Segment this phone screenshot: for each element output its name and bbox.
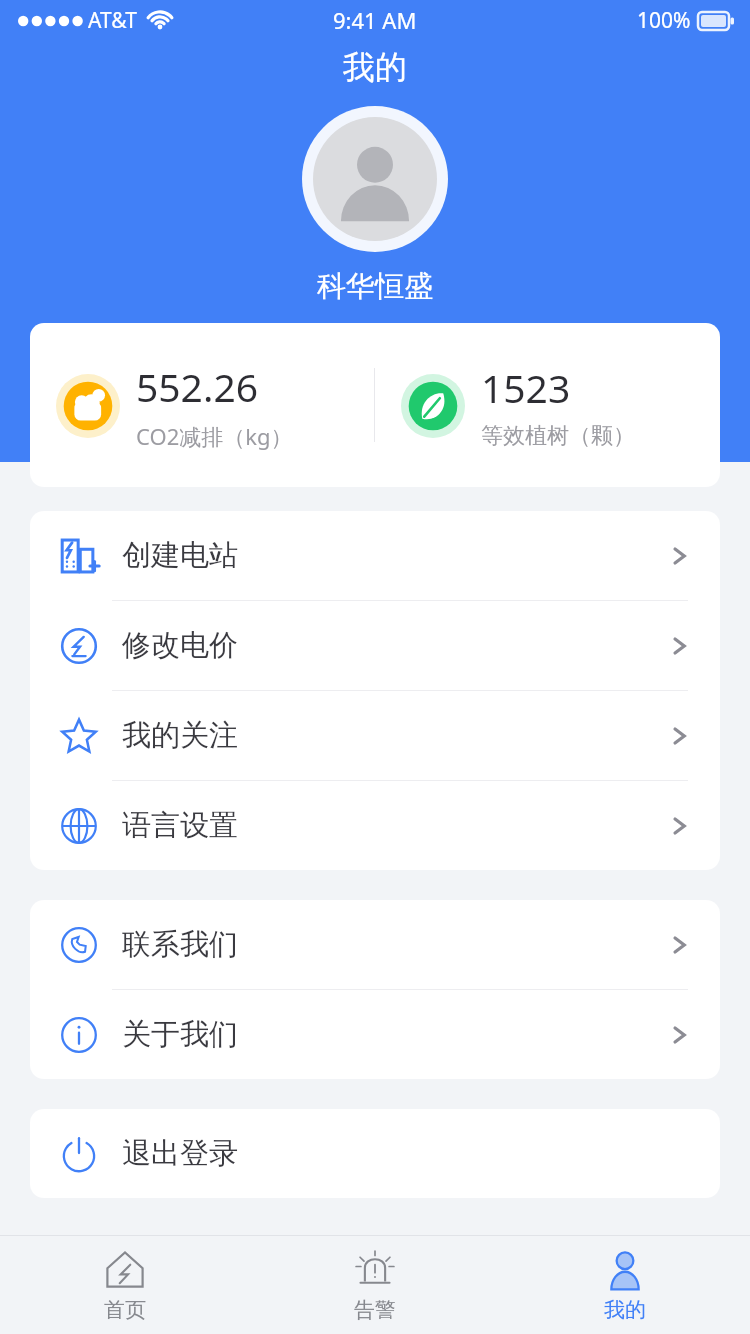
- staticText: 联系我们: [122, 926, 238, 963]
- staticText: 我的关注: [122, 717, 238, 754]
- staticText: 语言设置: [122, 807, 238, 844]
- button[interactable]: 语言设置: [30, 781, 720, 870]
- staticText: 创建电站: [122, 537, 238, 574]
- other: Profile avatar: [302, 106, 448, 252]
- staticText: 关于我们: [122, 1016, 238, 1053]
- button[interactable]: 首页: [0, 1236, 250, 1334]
- button[interactable]: 告警: [250, 1236, 500, 1334]
- staticText: 100%: [637, 6, 691, 35]
- staticText: AT&T: [88, 6, 137, 35]
- staticText: 我的: [604, 1297, 646, 1323]
- staticText: 告警: [354, 1297, 396, 1323]
- staticText: 等效植树（颗）: [481, 422, 635, 450]
- staticText: 修改电价: [122, 627, 238, 664]
- staticText: 退出登录: [122, 1135, 238, 1172]
- staticText: 我的: [343, 47, 407, 87]
- button[interactable]: 我的: [500, 1236, 750, 1334]
- staticText: 9:41 AM: [333, 5, 417, 35]
- staticText: 首页: [104, 1297, 146, 1323]
- button[interactable]: 修改电价: [30, 601, 720, 690]
- button[interactable]: 联系我们: [30, 900, 720, 989]
- button[interactable]: 退出登录: [30, 1109, 720, 1198]
- button[interactable]: 关于我们: [30, 990, 720, 1079]
- button[interactable]: 创建电站: [30, 511, 720, 600]
- staticText: 1523: [481, 361, 571, 414]
- staticText: 科华恒盛: [317, 268, 433, 305]
- staticText: 552.26: [136, 360, 258, 413]
- staticText: CO2减排（kg）: [136, 421, 293, 451]
- button[interactable]: 我的关注: [30, 691, 720, 780]
